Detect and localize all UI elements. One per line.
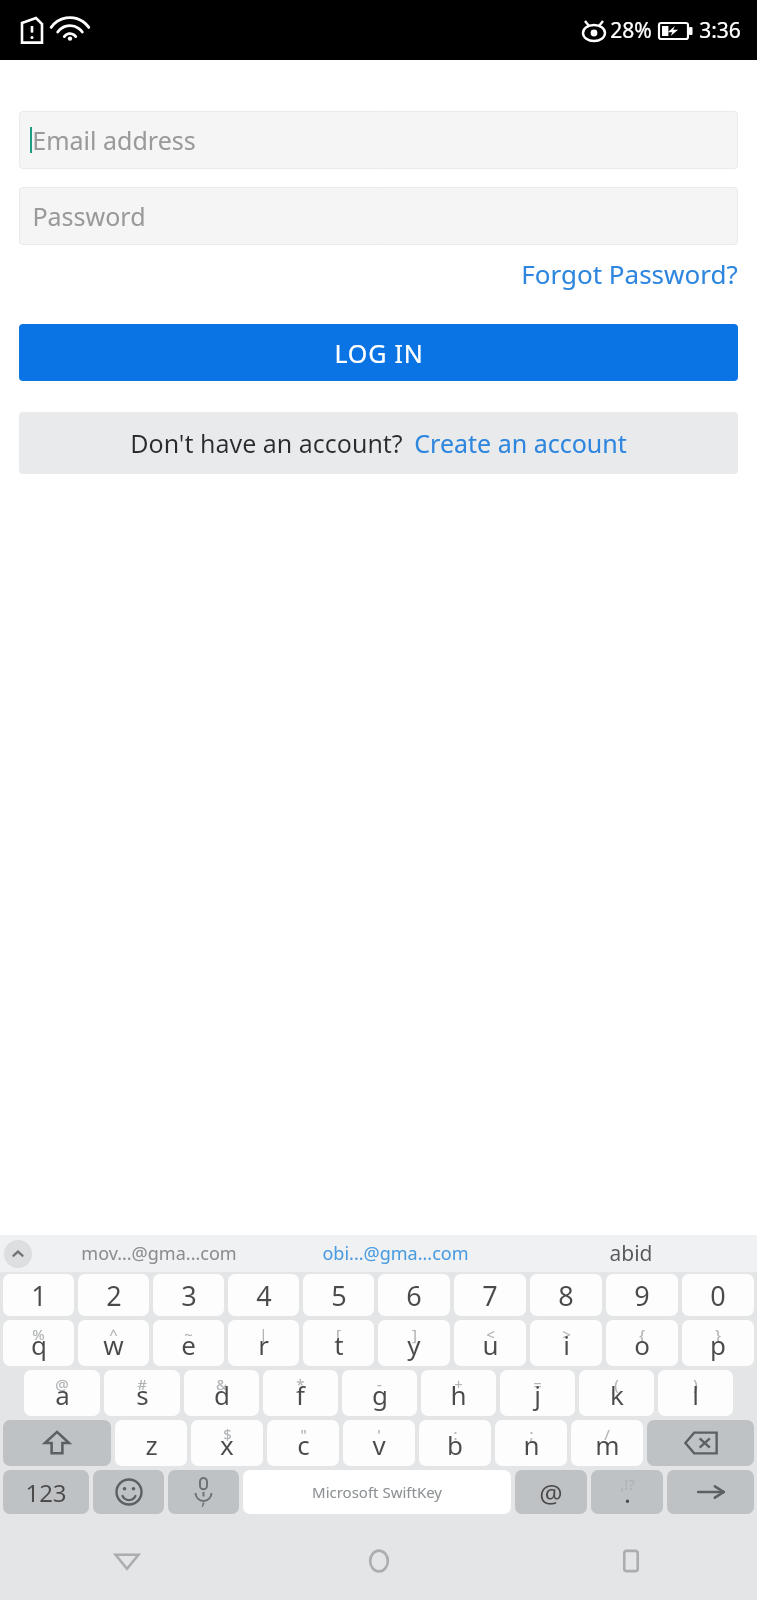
button[interactable]: { bbox=[606, 1320, 678, 1366]
button[interactable]: * bbox=[263, 1370, 338, 1416]
staticText: r bbox=[258, 1327, 269, 1362]
staticText: obi...@gma...com bbox=[322, 1241, 469, 1266]
staticText: a bbox=[55, 1377, 70, 1412]
button[interactable]: 0 bbox=[682, 1274, 754, 1316]
button[interactable]: mov...@gma...com bbox=[40, 1241, 277, 1266]
button[interactable]: Enter bbox=[667, 1470, 754, 1514]
button[interactable]: LOG IN bbox=[19, 324, 738, 381]
button[interactable]: 2 bbox=[78, 1274, 149, 1316]
staticText: z bbox=[145, 1427, 158, 1462]
button[interactable]: ] bbox=[378, 1320, 450, 1366]
button[interactable]: 5 bbox=[303, 1274, 374, 1316]
staticText: f bbox=[296, 1377, 305, 1412]
button[interactable]: _ bbox=[115, 1420, 187, 1466]
button[interactable]: } bbox=[682, 1320, 754, 1366]
staticText: Email address bbox=[32, 123, 196, 157]
button[interactable]: " bbox=[267, 1420, 339, 1466]
button[interactable]: Microsoft SwiftKey bbox=[243, 1470, 511, 1514]
staticText: b bbox=[447, 1427, 463, 1462]
button[interactable]: Expand suggestions bbox=[4, 1240, 32, 1268]
button[interactable]: ; bbox=[495, 1420, 567, 1466]
staticText: p bbox=[710, 1327, 726, 1362]
staticText: ... bbox=[545, 1474, 558, 1494]
staticText: ^ bbox=[109, 1324, 118, 1344]
staticText: w bbox=[103, 1327, 124, 1362]
button[interactable]: Backspace bbox=[647, 1420, 754, 1466]
button[interactable]: Voice input bbox=[168, 1470, 239, 1514]
button[interactable]: ( bbox=[579, 1370, 654, 1416]
button[interactable]: : bbox=[419, 1420, 491, 1466]
button[interactable]: 8 bbox=[530, 1274, 602, 1316]
button[interactable]: % bbox=[3, 1320, 74, 1366]
button[interactable]: Create an account bbox=[414, 426, 627, 460]
staticText: 3:36 bbox=[699, 16, 741, 45]
button[interactable]: - bbox=[342, 1370, 417, 1416]
staticText: ; bbox=[529, 1424, 534, 1444]
staticText: 28% bbox=[610, 16, 652, 45]
staticText: @ bbox=[55, 1374, 69, 1394]
staticText: h bbox=[450, 1377, 467, 1412]
staticText: : bbox=[453, 1424, 458, 1444]
button[interactable]: $ bbox=[191, 1420, 263, 1466]
button[interactable]: = bbox=[500, 1370, 575, 1416]
staticText: 1 bbox=[31, 1277, 47, 1314]
button[interactable]: + bbox=[421, 1370, 496, 1416]
button[interactable]: < bbox=[454, 1320, 526, 1366]
button[interactable]: [ bbox=[303, 1320, 374, 1366]
staticText: s bbox=[136, 1377, 149, 1412]
button[interactable]: ^ bbox=[78, 1320, 149, 1366]
staticText: ] bbox=[412, 1324, 417, 1344]
button[interactable]: Forgot Password? bbox=[521, 256, 738, 291]
staticText: g bbox=[372, 1377, 388, 1412]
staticText: l bbox=[692, 1377, 699, 1412]
staticText: & bbox=[216, 1374, 227, 1394]
button[interactable]: # bbox=[104, 1370, 180, 1416]
staticText: ~ bbox=[184, 1324, 193, 1344]
staticText: [ bbox=[336, 1324, 341, 1344]
staticText: ,!? bbox=[620, 1474, 635, 1494]
staticText: t bbox=[334, 1327, 344, 1362]
button[interactable]: Back bbox=[0, 1522, 253, 1600]
button[interactable]: Email address bbox=[19, 111, 738, 169]
button[interactable]: abid bbox=[513, 1239, 749, 1268]
button[interactable]: 6 bbox=[378, 1274, 450, 1316]
button[interactable]: 9 bbox=[606, 1274, 678, 1316]
button[interactable]: Password bbox=[19, 187, 738, 245]
button[interactable]: 3 bbox=[153, 1274, 224, 1316]
staticText: c bbox=[297, 1427, 310, 1462]
button[interactable]: ) bbox=[658, 1370, 733, 1416]
staticText: % bbox=[32, 1324, 45, 1344]
staticText: Don't have an account? bbox=[130, 426, 403, 460]
button[interactable]: ' bbox=[343, 1420, 415, 1466]
staticText: 2 bbox=[106, 1277, 122, 1314]
button[interactable]: ~ bbox=[153, 1320, 224, 1366]
button[interactable]: ... bbox=[515, 1470, 587, 1514]
staticText: j bbox=[534, 1377, 541, 1412]
button[interactable]: 123 bbox=[3, 1470, 89, 1514]
button[interactable]: / bbox=[571, 1420, 643, 1466]
staticText: y bbox=[407, 1327, 421, 1362]
button[interactable]: @ bbox=[24, 1370, 100, 1416]
button[interactable]: obi...@gma...com bbox=[277, 1241, 513, 1266]
button[interactable]: Emoji bbox=[93, 1470, 164, 1514]
staticText: . bbox=[624, 1475, 631, 1510]
button[interactable]: Shift bbox=[3, 1420, 111, 1466]
staticText: + bbox=[454, 1374, 463, 1394]
button[interactable]: > bbox=[530, 1320, 602, 1366]
staticText: 9 bbox=[634, 1277, 650, 1314]
staticText: abid bbox=[609, 1239, 653, 1268]
button[interactable]: 1 bbox=[3, 1274, 74, 1316]
button[interactable]: 7 bbox=[454, 1274, 526, 1316]
button[interactable]: ,!? bbox=[591, 1470, 663, 1514]
button[interactable]: Home bbox=[253, 1522, 505, 1600]
button[interactable]: | bbox=[228, 1320, 299, 1366]
button[interactable]: 4 bbox=[228, 1274, 299, 1316]
staticText: u bbox=[482, 1327, 499, 1362]
button[interactable]: & bbox=[184, 1370, 259, 1416]
button[interactable]: Recent apps bbox=[505, 1522, 757, 1600]
staticText: 5 bbox=[331, 1277, 347, 1314]
staticText: 0 bbox=[710, 1277, 726, 1314]
staticText: * bbox=[296, 1374, 305, 1394]
staticText: @ bbox=[539, 1475, 563, 1510]
staticText: , bbox=[201, 1486, 206, 1511]
